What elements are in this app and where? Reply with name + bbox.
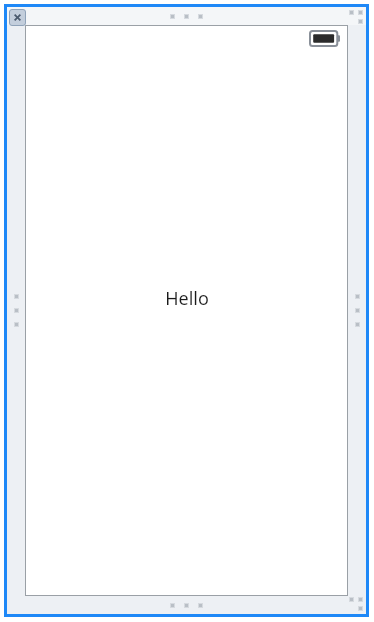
button[interactable] (348, 25, 366, 596)
button[interactable] (7, 596, 366, 614)
button[interactable] (7, 7, 366, 25)
button[interactable]: Battery (310, 31, 340, 46)
button[interactable] (7, 25, 25, 596)
button[interactable]: Close (9, 9, 26, 26)
staticText: Hello (165, 286, 209, 311)
